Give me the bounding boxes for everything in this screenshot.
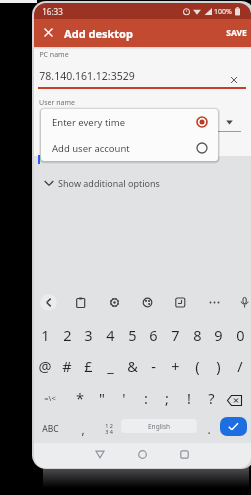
button[interactable] xyxy=(240,297,249,309)
staticText: 9 xyxy=(214,325,223,345)
staticText: 6 xyxy=(149,325,158,345)
button[interactable] xyxy=(209,301,220,305)
button[interactable]: 7 xyxy=(164,320,186,349)
button[interactable]: * xyxy=(69,383,91,412)
button[interactable] xyxy=(109,297,120,308)
button[interactable] xyxy=(180,450,189,459)
button[interactable]: 1 2 3 4 xyxy=(100,419,118,438)
staticText: ABC xyxy=(42,423,59,435)
button[interactable]: 5 xyxy=(121,320,143,349)
button[interactable]: Enter every time xyxy=(41,109,218,135)
button[interactable]: English xyxy=(121,419,197,433)
button[interactable]: . xyxy=(198,415,219,442)
button[interactable] xyxy=(175,297,186,308)
staticText: 4 xyxy=(106,325,115,345)
button[interactable]: # xyxy=(56,351,78,380)
button[interactable] xyxy=(138,450,147,459)
button[interactable]: ? xyxy=(200,383,222,412)
staticText: - xyxy=(151,356,156,376)
staticText: ) xyxy=(216,356,221,376)
staticText: SAVE xyxy=(226,27,247,39)
staticText: 0 xyxy=(236,325,245,345)
staticText: / xyxy=(237,356,243,376)
button[interactable]: ; xyxy=(156,383,178,412)
staticText: & xyxy=(127,356,138,376)
button[interactable]: SAVE xyxy=(222,19,250,46)
staticText: 7 xyxy=(171,325,180,345)
staticText: _ xyxy=(107,356,114,376)
staticText: Add user account xyxy=(52,142,130,155)
button[interactable]: 2 xyxy=(56,320,78,349)
button[interactable]: " xyxy=(91,383,113,412)
staticText: ; xyxy=(165,388,169,408)
button[interactable]: ( xyxy=(186,351,208,380)
button[interactable]: £ xyxy=(77,351,99,380)
staticText: 78.140.161.12:3529 xyxy=(39,69,135,83)
staticText: =\< xyxy=(44,393,56,403)
button[interactable]: ABC xyxy=(36,415,64,442)
staticText: 1 2 3 4 xyxy=(105,422,113,436)
staticText: , xyxy=(81,421,85,437)
button[interactable]: Add user account xyxy=(41,135,218,161)
staticText: 3 xyxy=(84,325,93,345)
staticText: 1 xyxy=(41,325,50,345)
staticText: : xyxy=(144,388,148,408)
staticText: 8 xyxy=(193,325,202,345)
button[interactable]: 0 xyxy=(229,320,251,349)
button[interactable] xyxy=(142,297,153,308)
staticText: PC name xyxy=(39,50,69,60)
button[interactable]: - xyxy=(142,351,164,380)
button[interactable] xyxy=(95,450,105,459)
staticText: ' xyxy=(122,388,126,408)
button[interactable]: 4 xyxy=(99,320,121,349)
button[interactable]: 3 xyxy=(77,320,99,349)
button[interactable]: 78.140.161.12:3529 xyxy=(39,67,169,85)
button[interactable]: =\< xyxy=(36,383,64,412)
button[interactable]: @ xyxy=(34,351,56,380)
staticText: English xyxy=(148,422,171,431)
button[interactable]: ! xyxy=(178,383,200,412)
staticText: # xyxy=(62,356,72,376)
staticText: ? xyxy=(208,388,215,408)
staticText: . xyxy=(207,421,211,437)
staticText: £ xyxy=(84,356,93,376)
button[interactable]: _ xyxy=(99,351,121,380)
staticText: Show additional options xyxy=(58,177,160,189)
staticText: + xyxy=(171,356,180,376)
button[interactable]: 6 xyxy=(142,320,164,349)
button[interactable] xyxy=(40,294,57,311)
button[interactable]: , xyxy=(72,415,93,442)
button[interactable] xyxy=(76,297,86,308)
button[interactable]: 8 xyxy=(186,320,208,349)
staticText: Enter every time xyxy=(52,116,126,129)
button[interactable] xyxy=(38,174,198,192)
staticText: @ xyxy=(38,356,52,376)
button[interactable]: 9 xyxy=(207,320,229,349)
staticText: ( xyxy=(195,356,200,376)
staticText: * xyxy=(76,388,84,408)
button[interactable]: / xyxy=(229,351,251,380)
staticText: 100% xyxy=(214,7,232,17)
button[interactable]: & xyxy=(121,351,143,380)
staticText: User name xyxy=(39,98,75,108)
staticText: 2 xyxy=(63,325,72,345)
button[interactable] xyxy=(227,395,243,407)
staticText: ! xyxy=(187,388,191,408)
button[interactable] xyxy=(43,27,54,38)
button[interactable]: + xyxy=(164,351,186,380)
button[interactable] xyxy=(220,417,247,436)
staticText: " xyxy=(99,388,105,408)
staticText: 16:33 xyxy=(42,6,63,17)
staticText: Add desktop xyxy=(64,26,133,41)
staticText: 5 xyxy=(128,325,137,345)
button[interactable]: ) xyxy=(207,351,229,380)
button[interactable]: 1 xyxy=(34,320,56,349)
button[interactable] xyxy=(230,76,238,84)
button[interactable]: : xyxy=(135,383,157,412)
button[interactable]: ' xyxy=(113,383,135,412)
